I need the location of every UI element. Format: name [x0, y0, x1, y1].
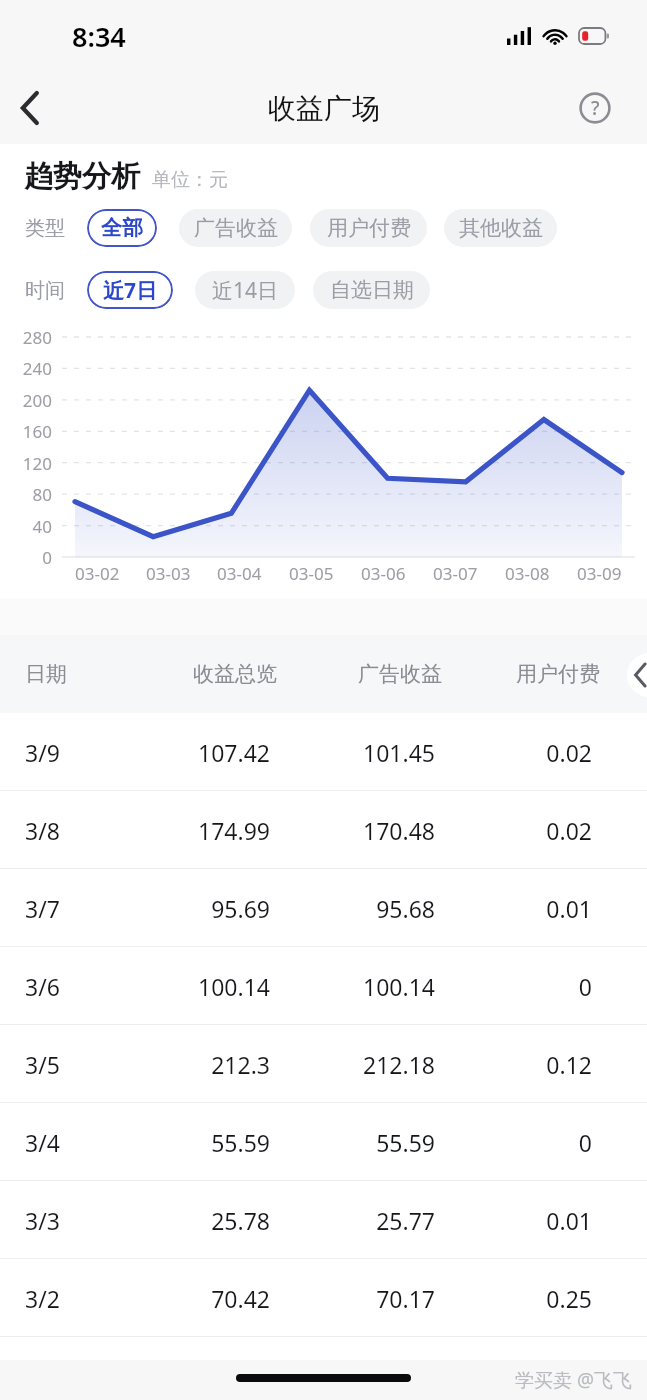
staticText: 3/7: [25, 893, 60, 924]
staticText: 107.42: [160, 737, 270, 768]
button[interactable]: 全部: [87, 209, 157, 247]
button[interactable]: Help: [573, 86, 617, 130]
staticText: 55.59: [325, 1127, 435, 1158]
button[interactable]: 3/9: [0, 713, 647, 791]
staticText: 95.69: [160, 893, 270, 924]
staticText: 0: [0, 546, 52, 569]
staticText: 0.01: [482, 1205, 592, 1236]
button[interactable]: 近14日: [195, 271, 295, 309]
staticText: 类型: [25, 216, 65, 241]
staticText: 200: [0, 389, 52, 412]
staticText: 3/3: [25, 1205, 60, 1236]
staticText: 03-03: [146, 562, 191, 585]
staticText: 自选日期: [330, 277, 414, 303]
staticText: 0.02: [482, 815, 592, 846]
staticText: 其他收益: [459, 215, 543, 241]
button[interactable]: 自选日期: [313, 271, 430, 309]
button[interactable]: 3/8: [0, 791, 647, 869]
button[interactable]: 广告收益: [179, 209, 292, 247]
staticText: 3/4: [25, 1127, 60, 1158]
staticText: 70.17: [325, 1283, 435, 1314]
staticText: 03-07: [433, 562, 478, 585]
staticText: 03-04: [217, 562, 262, 585]
staticText: 55.59: [160, 1127, 270, 1158]
staticText: 用户付费: [327, 215, 411, 241]
staticText: 240: [0, 357, 52, 380]
staticText: 03-09: [577, 562, 622, 585]
staticText: 0.01: [482, 893, 592, 924]
button[interactable]: 其他收益: [444, 209, 557, 247]
staticText: 100.14: [160, 971, 270, 1002]
button[interactable]: 3/4: [0, 1103, 647, 1181]
staticText: ?: [591, 95, 600, 121]
button[interactable]: 近7日: [87, 271, 173, 309]
staticText: 212.18: [325, 1049, 435, 1080]
staticText: 0: [482, 971, 592, 1002]
button[interactable]: 3/7: [0, 869, 647, 947]
button[interactable]: 3/5: [0, 1025, 647, 1103]
staticText: 03-02: [75, 562, 120, 585]
staticText: 用户付费: [503, 661, 613, 687]
staticText: 0: [482, 1127, 592, 1158]
button[interactable]: 3/3: [0, 1181, 647, 1259]
staticText: 全部: [101, 215, 143, 241]
staticText: 3/9: [25, 737, 60, 768]
button[interactable]: Back: [0, 78, 60, 138]
staticText: 70.42: [160, 1283, 270, 1314]
staticText: 日期: [25, 661, 67, 687]
staticText: 近14日: [212, 276, 279, 305]
staticText: 3/2: [25, 1283, 60, 1314]
staticText: 0.12: [482, 1049, 592, 1080]
staticText: 3/8: [25, 815, 60, 846]
staticText: 3/6: [25, 971, 60, 1002]
staticText: 时间: [25, 278, 65, 303]
staticText: 40: [0, 515, 52, 538]
staticText: 广告收益: [345, 661, 455, 687]
staticText: 80: [0, 483, 52, 506]
button[interactable]: Scroll left: [627, 653, 647, 697]
button[interactable]: 用户付费: [310, 209, 427, 247]
staticText: 0.25: [482, 1283, 592, 1314]
staticText: 25.77: [325, 1205, 435, 1236]
staticText: 95.68: [325, 893, 435, 924]
staticText: 单位：元: [152, 168, 228, 192]
staticText: 学买卖 @飞飞: [515, 1367, 633, 1393]
staticText: 160: [0, 420, 52, 443]
staticText: 03-05: [289, 562, 334, 585]
staticText: 3/5: [25, 1049, 60, 1080]
button[interactable]: 3/2: [0, 1259, 647, 1337]
button[interactable]: 3/6: [0, 947, 647, 1025]
staticText: 趋势分析: [24, 158, 140, 195]
staticText: 212.3: [160, 1049, 270, 1080]
staticText: 收益广场: [268, 91, 380, 126]
staticText: 100.14: [325, 971, 435, 1002]
staticText: 广告收益: [194, 215, 278, 241]
staticText: 8:34: [72, 18, 126, 55]
staticText: 03-08: [505, 562, 550, 585]
staticText: 近7日: [103, 276, 158, 305]
staticText: 25.78: [160, 1205, 270, 1236]
staticText: 0.02: [482, 737, 592, 768]
staticText: 101.45: [325, 737, 435, 768]
staticText: 收益总览: [180, 661, 290, 687]
staticText: 174.99: [160, 815, 270, 846]
staticText: 120: [0, 452, 52, 475]
staticText: 170.48: [325, 815, 435, 846]
staticText: 280: [0, 326, 52, 349]
staticText: 03-06: [361, 562, 406, 585]
